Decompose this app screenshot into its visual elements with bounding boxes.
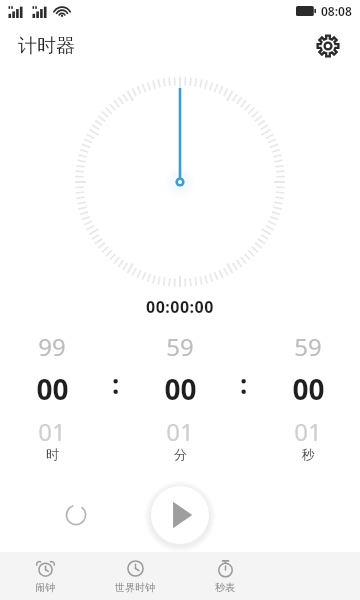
staticText: 时	[46, 446, 59, 462]
staticText: 00:00:00	[146, 296, 214, 318]
button[interactable]: Reset	[54, 493, 98, 537]
button[interactable]: 闹钟	[0, 552, 90, 600]
staticText: 99	[38, 330, 66, 363]
staticText: 01	[38, 415, 66, 442]
staticText: 59	[166, 330, 194, 363]
button[interactable]: 59	[128, 330, 232, 442]
staticText: :	[112, 366, 120, 401]
staticText: :	[240, 366, 248, 401]
staticText: 00	[292, 370, 325, 408]
staticText: 秒	[302, 446, 315, 462]
staticText: 计时器	[18, 34, 75, 58]
staticText: 分	[174, 446, 187, 462]
staticText: 01	[294, 415, 322, 442]
button[interactable]: 59	[256, 330, 360, 442]
staticText: 08:08	[321, 3, 352, 19]
staticText: 闹钟	[35, 581, 55, 594]
button[interactable]: 99	[0, 330, 104, 442]
button[interactable]: 秒表	[180, 552, 270, 600]
staticText: 59	[294, 330, 322, 363]
staticText: 秒表	[215, 581, 235, 594]
staticText: 00	[36, 370, 69, 408]
staticText: 世界时钟	[115, 581, 155, 594]
staticText: 01	[166, 415, 194, 442]
button[interactable]: Settings	[308, 26, 348, 66]
button[interactable]: Start	[149, 484, 211, 546]
button[interactable]: 世界时钟	[90, 552, 180, 600]
staticText: 00	[164, 370, 197, 408]
